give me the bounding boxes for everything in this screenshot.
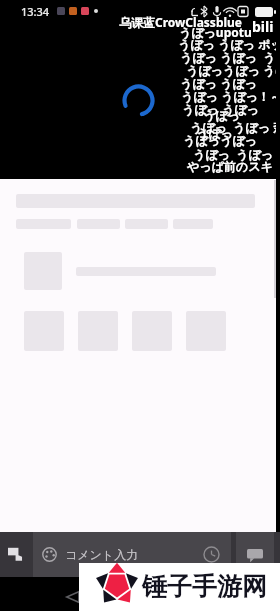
staticText: 13:34 bbox=[21, 4, 50, 19]
staticText: うぼっ bbox=[196, 126, 233, 141]
staticText: うぼっupotu bbox=[179, 24, 252, 40]
staticText: うぼっ うぼっ bbox=[182, 101, 259, 117]
button[interactable]: Back bbox=[66, 591, 79, 603]
staticText: やっぱ前のスキ bbox=[187, 159, 273, 174]
button[interactable]: Comments bbox=[236, 532, 274, 577]
staticText: 乌课蓝CrowClassblue bbox=[119, 14, 243, 30]
staticText: うぼっうぼっ bbox=[183, 133, 257, 148]
staticText: うぼっ うぼっ う bbox=[180, 49, 276, 65]
button[interactable]: コメント入力 bbox=[33, 532, 231, 577]
button[interactable]: History bbox=[191, 532, 231, 577]
staticText: うぼっ うぼっ bbox=[193, 146, 273, 162]
staticText: bili bbox=[252, 17, 274, 36]
staticText: コメント入力 bbox=[65, 547, 139, 562]
staticText: うぼっ bbox=[203, 108, 240, 123]
staticText: うぼっ うぼっ bbox=[180, 75, 257, 91]
staticText: うぼっ うぼっ！～ bbox=[181, 88, 280, 104]
button[interactable]: Switch input method bbox=[0, 532, 33, 577]
staticText: うぼっうぼっ うぼっ bbox=[186, 62, 280, 78]
staticText: うぼっ うぼっ ポッデ bbox=[178, 36, 280, 52]
staticText: うぼっ うぼっ 森 bbox=[190, 119, 280, 135]
staticText: 锤子手游网 bbox=[142, 571, 267, 602]
